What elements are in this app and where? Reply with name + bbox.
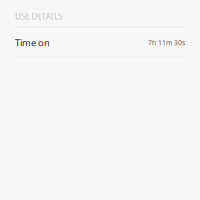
staticText: 7h 11m 30s: [148, 38, 185, 47]
button[interactable]: Time on: [0, 28, 200, 57]
staticText: USE DETAILS: [15, 11, 62, 22]
staticText: Time on: [15, 36, 50, 49]
